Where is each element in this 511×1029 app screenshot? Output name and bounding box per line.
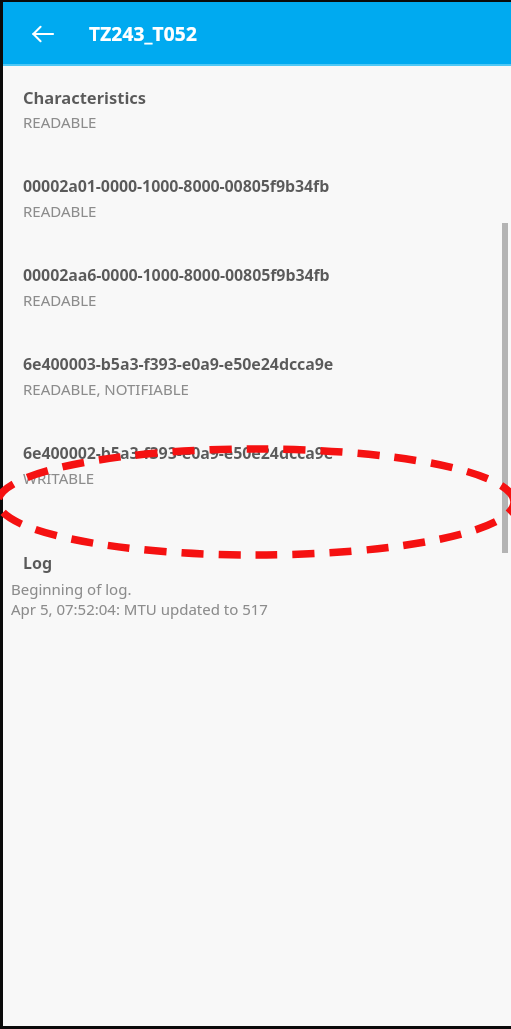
staticText: READABLE: [23, 201, 97, 221]
button[interactable]: Log: [3, 551, 511, 579]
button[interactable]: Beginning of log. Apr 5, 07:52:04: MTU u…: [3, 579, 511, 619]
staticText: 6e400003-b5a3-f393-e0a9-e50e24dcca9e: [23, 353, 334, 375]
staticText: Log: [23, 552, 53, 574]
staticText: 6e400002-b5a3-f393-e0a9-e50e24dcca9e: [23, 442, 334, 464]
button[interactable]: 6e400003-b5a3-f393-e0a9-e50e24dcca9e: [3, 353, 511, 442]
button[interactable]: 00002a01-0000-1000-8000-00805f9b34fb: [3, 175, 511, 264]
staticText: WRITABLE: [23, 468, 95, 488]
staticText: READABLE, NOTIFIABLE: [23, 379, 189, 399]
staticText: Characteristics: [23, 86, 147, 108]
staticText: 00002aa6-0000-1000-8000-00805f9b34fb: [23, 264, 330, 286]
staticText: READABLE: [23, 112, 97, 132]
staticText: TZ243_T052: [89, 21, 197, 47]
button[interactable]: 00002aa6-0000-1000-8000-00805f9b34fb: [3, 264, 511, 353]
staticText: READABLE: [23, 290, 97, 310]
staticText: Beginning of log. Apr 5, 07:52:04: MTU u…: [11, 579, 268, 619]
button[interactable]: Navigate up: [17, 8, 69, 60]
staticText: 00002a01-0000-1000-8000-00805f9b34fb: [23, 175, 330, 197]
button[interactable]: Characteristics: [3, 86, 511, 175]
button[interactable]: 6e400002-b5a3-f393-e0a9-e50e24dcca9e: [3, 442, 511, 531]
